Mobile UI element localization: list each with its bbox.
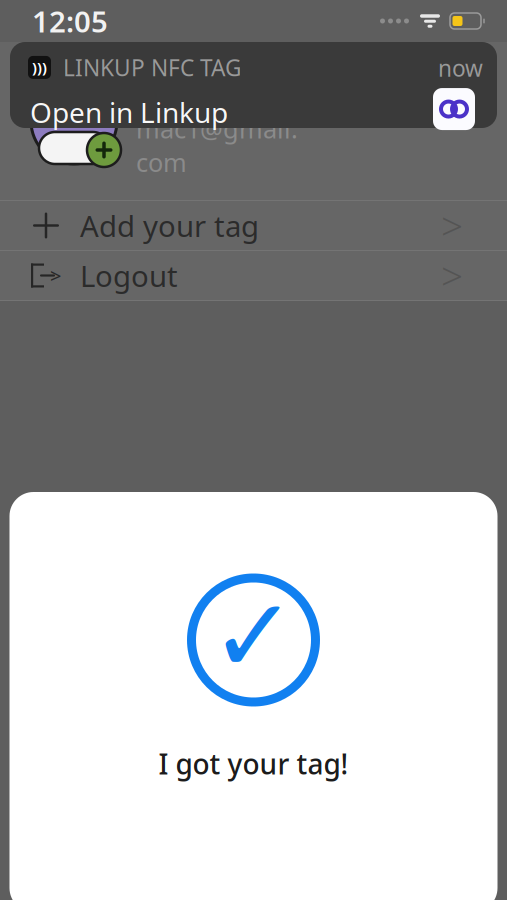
staticText: >: [50, 262, 61, 289]
staticText: I got your tag!: [158, 745, 348, 782]
staticText: LINKUP NFC TAG: [63, 52, 242, 82]
button[interactable]: ))): [10, 42, 497, 128]
staticText: Add your tag: [80, 206, 259, 245]
staticText: mac1@gmail.com: [136, 112, 298, 179]
staticText: mac12: [136, 63, 249, 111]
staticText: >: [441, 200, 463, 251]
button[interactable]: Add your tag: [0, 201, 507, 250]
staticText: ✓: [210, 577, 297, 695]
staticText: now: [438, 53, 483, 83]
staticText: ))): [32, 58, 47, 77]
staticText: >: [441, 250, 463, 301]
button[interactable]: >: [0, 251, 507, 300]
staticText: Logout: [80, 256, 178, 295]
staticText: Open in Linkup: [30, 93, 228, 131]
staticText: 12:05: [32, 1, 108, 40]
